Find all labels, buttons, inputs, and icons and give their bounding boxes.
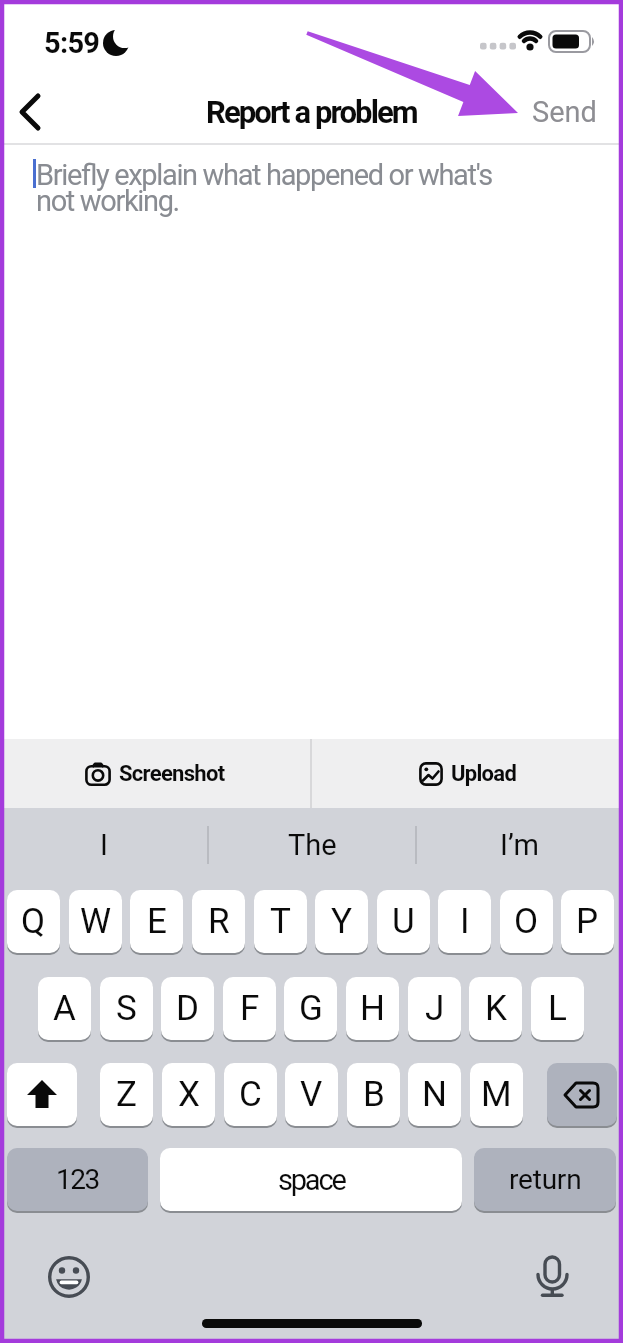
button[interactable]: [44, 1252, 94, 1302]
button[interactable]: V: [285, 1063, 338, 1126]
staticText: B: [363, 1074, 385, 1115]
staticText: not working.: [36, 184, 179, 218]
button[interactable]: N: [408, 1063, 461, 1126]
button[interactable]: return: [474, 1148, 616, 1211]
button[interactable]: S: [100, 977, 153, 1040]
staticText: space: [278, 1163, 345, 1197]
staticText: E: [147, 901, 167, 942]
button[interactable]: The: [208, 812, 416, 878]
staticText: V: [300, 1074, 323, 1115]
button[interactable]: [547, 1063, 617, 1126]
button[interactable]: Send: [521, 92, 607, 132]
button[interactable]: H: [346, 977, 399, 1040]
staticText: N: [422, 1074, 447, 1115]
button[interactable]: Screenshot: [0, 739, 310, 808]
staticText: T: [270, 901, 291, 942]
button[interactable]: [527, 1251, 577, 1301]
staticText: Briefly explain what happened or what's: [36, 158, 492, 192]
staticText: H: [360, 988, 385, 1029]
staticText: A: [53, 988, 76, 1029]
staticText: Y: [331, 901, 353, 942]
button[interactable]: Y: [315, 890, 368, 953]
button[interactable]: E: [130, 890, 183, 953]
staticText: Screenshot: [119, 761, 225, 787]
staticText: 5:59: [44, 26, 100, 60]
staticText: C: [239, 1074, 262, 1115]
staticText: D: [176, 988, 199, 1029]
staticText: I: [100, 828, 108, 862]
staticText: return: [509, 1163, 582, 1196]
button[interactable]: U: [377, 890, 430, 953]
staticText: F: [240, 988, 260, 1029]
staticText: Q: [21, 901, 46, 942]
button[interactable]: M: [470, 1063, 523, 1126]
button[interactable]: R: [192, 890, 245, 953]
button[interactable]: D: [161, 977, 214, 1040]
button[interactable]: A: [38, 977, 91, 1040]
button[interactable]: Q: [7, 890, 60, 953]
staticText: O: [514, 901, 539, 942]
staticText: 123: [56, 1163, 99, 1196]
staticText: G: [299, 988, 323, 1029]
button[interactable]: G: [284, 977, 337, 1040]
button[interactable]: T: [254, 890, 307, 953]
staticText: P: [576, 901, 599, 942]
staticText: U: [392, 901, 415, 942]
button[interactable]: J: [408, 977, 461, 1040]
staticText: The: [288, 828, 337, 862]
staticText: I’m: [500, 828, 539, 862]
staticText: K: [485, 988, 507, 1029]
button[interactable]: I: [438, 890, 491, 953]
button[interactable]: X: [162, 1063, 215, 1126]
button[interactable]: K: [469, 977, 522, 1040]
staticText: W: [80, 901, 112, 942]
button[interactable]: F: [223, 977, 276, 1040]
staticText: I: [460, 901, 470, 942]
button[interactable]: Upload: [312, 739, 623, 808]
staticText: S: [116, 988, 137, 1029]
staticText: X: [178, 1074, 200, 1115]
button[interactable]: P: [561, 890, 614, 953]
staticText: Report a problem: [206, 94, 417, 130]
staticText: L: [548, 988, 567, 1029]
staticText: Send: [532, 95, 597, 129]
button[interactable]: 123: [7, 1148, 148, 1211]
button[interactable]: O: [500, 890, 553, 953]
button[interactable]: [8, 90, 52, 134]
button[interactable]: L: [531, 977, 584, 1040]
button[interactable]: [7, 1063, 77, 1126]
staticText: R: [208, 901, 230, 942]
button[interactable]: B: [347, 1063, 400, 1126]
staticText: M: [481, 1074, 512, 1115]
button[interactable]: C: [224, 1063, 277, 1126]
button[interactable]: I: [0, 812, 208, 878]
staticText: J: [425, 988, 445, 1029]
button[interactable]: Z: [100, 1063, 153, 1126]
button[interactable]: W: [69, 890, 122, 953]
staticText: Upload: [451, 761, 517, 787]
staticText: Z: [116, 1074, 137, 1115]
button[interactable]: I’m: [415, 812, 623, 878]
button[interactable]: space: [160, 1148, 462, 1211]
